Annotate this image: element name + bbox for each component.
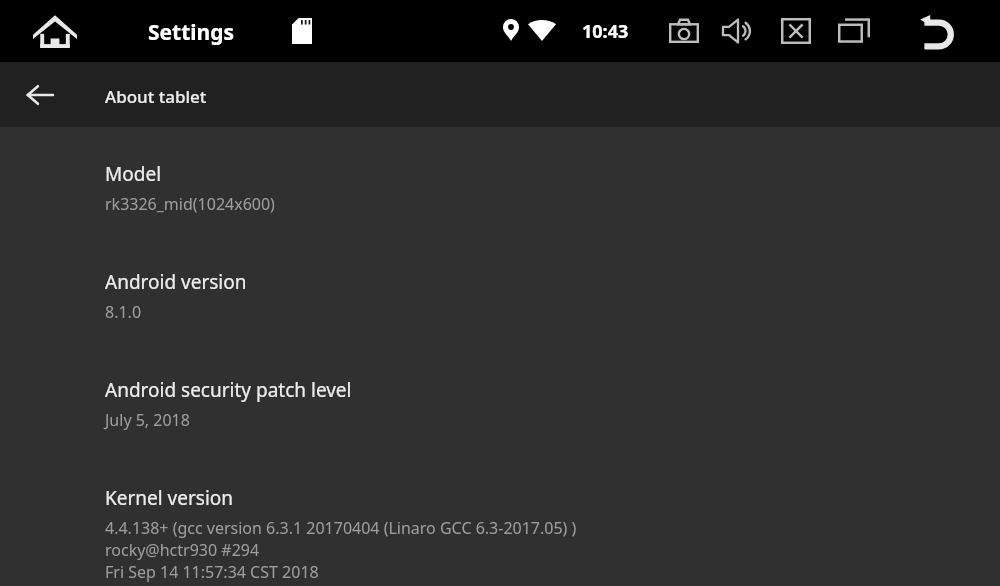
button[interactable]: Close [772, 9, 820, 53]
button[interactable]: Screenshot [660, 9, 708, 53]
button[interactable]: Navigate up [16, 73, 64, 117]
staticText: 10:43 [582, 19, 629, 44]
staticText: rocky@hctr930 #294 [105, 539, 260, 561]
staticText: Android version [105, 269, 247, 295]
staticText: 4.4.138+ (gcc version 6.3.1 20170404 (Li… [105, 517, 577, 539]
button[interactable]: Volume [714, 9, 762, 53]
staticText: Fri Sep 14 11:57:34 CST 2018 [105, 561, 319, 583]
staticText: rk3326_mid(1024x600) [105, 193, 275, 215]
button[interactable]: Home [25, 7, 85, 55]
staticText: 8.1.0 [105, 301, 142, 323]
staticText: Kernel version [105, 485, 234, 511]
button[interactable]: Kernel version [0, 483, 1000, 586]
button[interactable]: Back [908, 7, 960, 55]
staticText: Android security patch level [105, 377, 352, 403]
button[interactable]: Storage [280, 9, 324, 53]
button[interactable]: Model [0, 159, 1000, 221]
staticText: About tablet [105, 85, 207, 108]
staticText: Settings [148, 18, 235, 47]
button[interactable]: Recent apps [830, 9, 878, 53]
staticText: Model [105, 161, 162, 187]
button[interactable]: Android version [0, 267, 1000, 329]
button[interactable]: Android security patch level [0, 375, 1000, 437]
staticText: July 5, 2018 [105, 409, 190, 431]
